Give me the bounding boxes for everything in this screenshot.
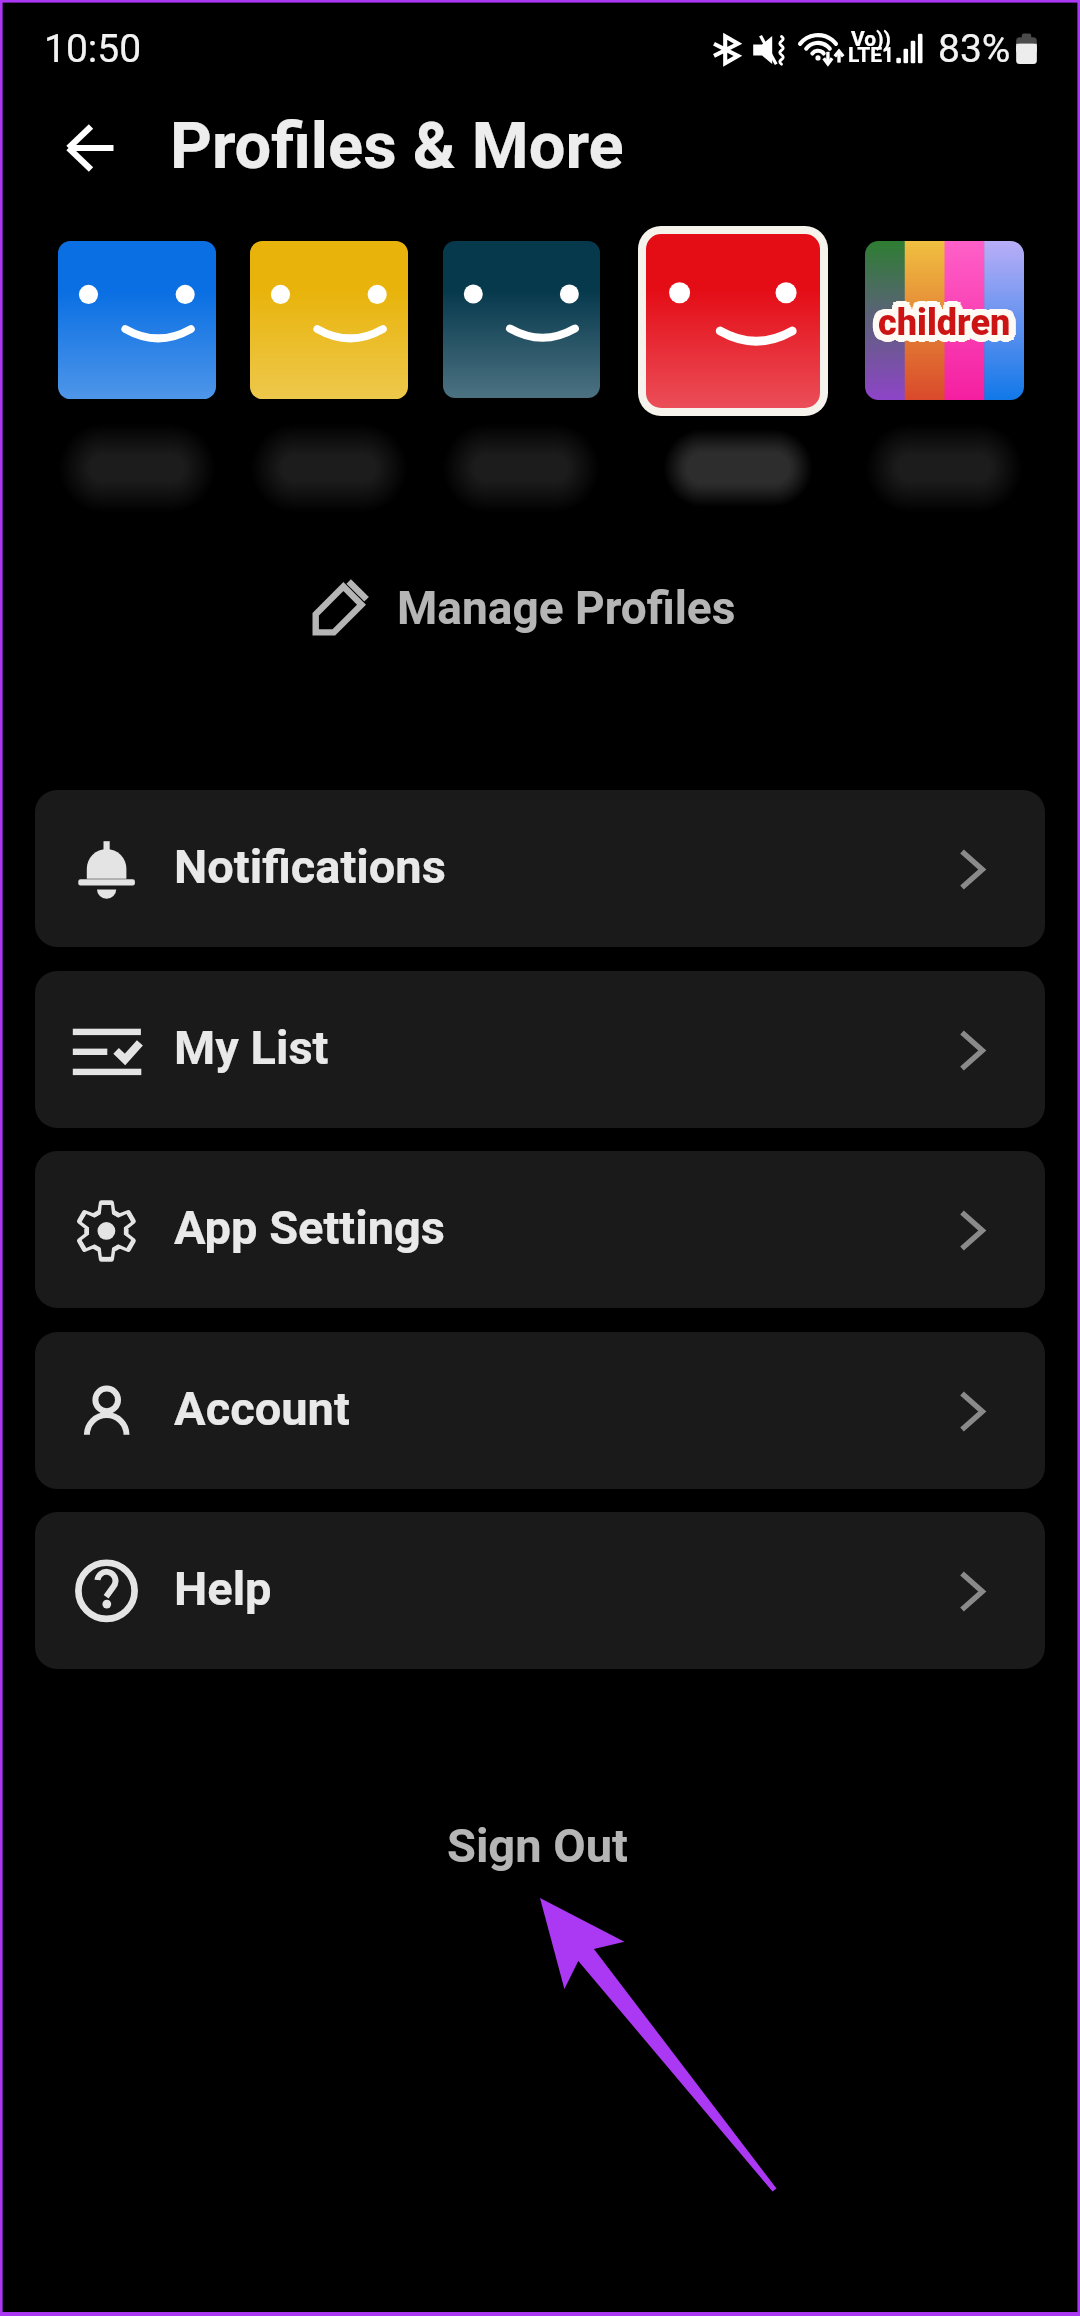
button[interactable]: App Settings	[35, 1151, 1045, 1308]
button[interactable]: My List	[35, 971, 1045, 1128]
staticText: children	[872, 304, 1005, 346]
staticText: children	[873, 307, 1006, 349]
staticText: LTE1	[848, 43, 895, 68]
staticText: Help	[174, 1561, 272, 1616]
staticText: children	[878, 309, 1011, 351]
staticText: children	[885, 302, 1018, 344]
staticText: Vo))	[851, 27, 891, 52]
button[interactable]: Current profile, selected	[638, 226, 828, 416]
staticText: children	[880, 296, 1013, 338]
button[interactable]: Notifications	[35, 790, 1045, 947]
staticText: children	[883, 307, 1016, 349]
button[interactable]: Profile	[250, 241, 408, 399]
staticText: children	[876, 296, 1009, 338]
staticText: Manage Profiles	[397, 581, 736, 635]
staticText: children	[876, 308, 1009, 350]
staticText: children	[872, 302, 1005, 344]
staticText: children	[873, 297, 1006, 339]
button[interactable]: Sign Out	[447, 1818, 628, 1873]
staticText: children	[878, 302, 1011, 344]
staticText: My List	[174, 1020, 329, 1075]
staticText: 10:50	[44, 26, 142, 72]
staticText: children	[878, 296, 1011, 338]
staticText: children	[884, 300, 1017, 342]
staticText: Notifications	[174, 839, 446, 894]
button[interactable]: Children profile	[865, 241, 1024, 400]
staticText: Account	[174, 1381, 350, 1436]
staticText: App Settings	[174, 1200, 446, 1255]
button[interactable]: Account	[35, 1332, 1045, 1489]
staticText: children	[883, 297, 1016, 339]
staticText: children	[884, 304, 1017, 346]
button[interactable]: Back	[42, 98, 136, 192]
button[interactable]: Manage Profiles	[300, 565, 736, 655]
staticText: Profiles & More	[170, 108, 624, 184]
button[interactable]: Profile	[58, 241, 216, 399]
button[interactable]: Help	[35, 1512, 1045, 1669]
button[interactable]: Profile	[443, 241, 600, 398]
staticText: children	[872, 300, 1005, 342]
staticText: children	[880, 308, 1013, 350]
staticText: 83%	[938, 26, 1011, 72]
